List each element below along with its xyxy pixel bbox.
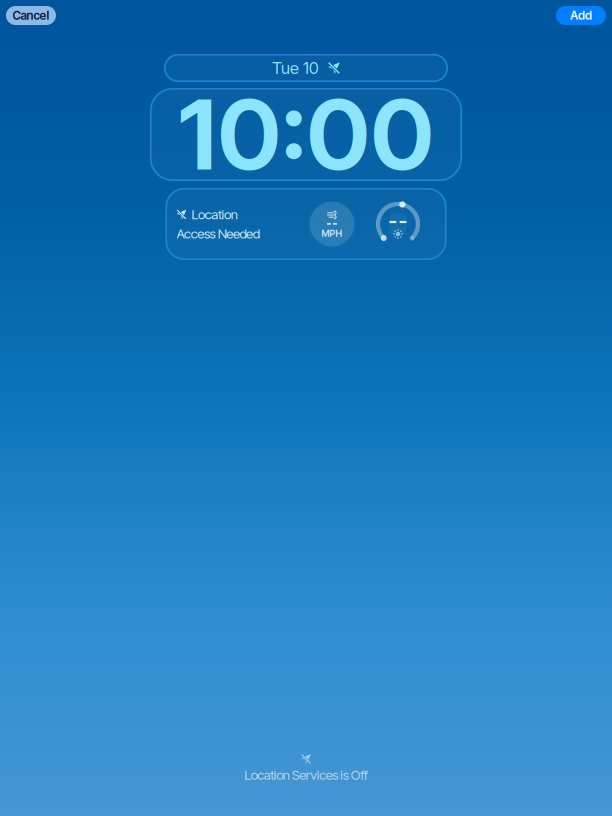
staticText: Location Services is Off: [244, 767, 368, 783]
staticText: MPH: [321, 228, 342, 239]
staticText: Tue 10: [272, 58, 319, 78]
staticText: Access Needed: [176, 225, 260, 242]
button[interactable]: Cancel: [6, 6, 56, 25]
staticText: Add: [570, 8, 592, 23]
staticText: Cancel: [12, 8, 49, 23]
button[interactable]: Add: [556, 6, 606, 25]
staticText: Location: [191, 206, 238, 222]
staticText: 10:00: [179, 76, 433, 193]
